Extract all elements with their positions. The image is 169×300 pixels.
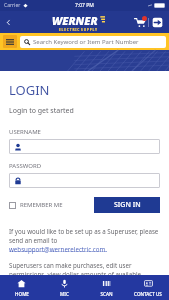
button[interactable]: REMEMBER ME [9, 199, 63, 211]
button[interactable]: Werner Electric Supply [52, 13, 105, 32]
staticText: HOME [15, 291, 29, 297]
button[interactable]: SCAN [85, 276, 127, 300]
button[interactable]: Menu [3, 35, 17, 48]
staticText: Superusers can make purchases, edit user… [9, 261, 160, 275]
button[interactable]: Back [0, 14, 16, 30]
staticText: E L E C T R I C S U P P L Y [59, 28, 98, 32]
staticText: USERNAME [9, 128, 41, 136]
staticText: REMEMBER ME [20, 201, 63, 209]
staticText: Carrier [4, 2, 21, 9]
button[interactable] [9, 173, 160, 188]
staticText: Search Keyword or Item Part Number [33, 38, 139, 46]
staticText: CONTACT US [134, 291, 162, 297]
button[interactable] [9, 139, 160, 154]
staticText: MIC [60, 291, 69, 297]
staticText: WERNER [52, 13, 98, 28]
button[interactable]: HOME [0, 276, 43, 300]
button[interactable]: Search Keyword or Item Part Number [20, 36, 166, 48]
button[interactable]: Cart [132, 14, 148, 30]
button[interactable]: websupport@wernerelectric.com. [9, 245, 108, 253]
staticText: 7:07 PM [75, 2, 94, 9]
button[interactable]: Login [149, 14, 165, 30]
staticText: PASSWORD [9, 162, 42, 170]
staticText: Login to get started [9, 106, 74, 116]
button[interactable]: MIC [43, 276, 85, 300]
staticText: SCAN [100, 291, 113, 297]
button[interactable]: CONTACT US [127, 276, 169, 300]
button[interactable]: SIGN IN [94, 197, 160, 213]
staticText: LOGIN [9, 81, 50, 99]
staticText: SIGN IN [114, 200, 141, 210]
staticText: If you would like to be set up as a Supe… [9, 227, 160, 245]
